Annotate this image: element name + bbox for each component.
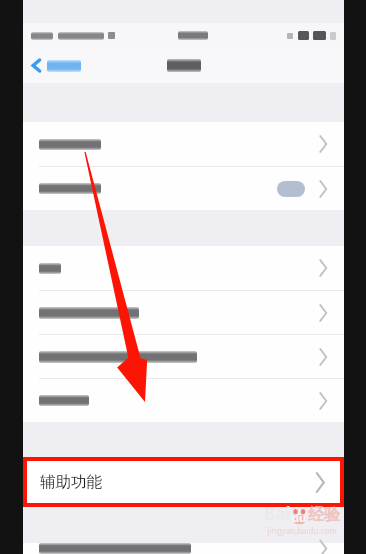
staticText: 辅助功能 xyxy=(40,472,102,492)
button[interactable]: 返回 设置 xyxy=(29,54,84,77)
staticText: Bai xyxy=(264,502,291,525)
button[interactable]: 辅助功能 xyxy=(23,457,344,507)
button[interactable] xyxy=(23,122,344,166)
staticText: 经验 xyxy=(308,505,340,525)
button[interactable] xyxy=(23,335,344,378)
staticText: du xyxy=(292,510,307,525)
button[interactable] xyxy=(23,167,344,210)
button[interactable] xyxy=(23,291,344,334)
button[interactable] xyxy=(23,379,344,422)
staticText: jingyan.baidu.com xyxy=(267,525,337,536)
button[interactable] xyxy=(23,543,344,554)
button[interactable] xyxy=(23,246,344,290)
